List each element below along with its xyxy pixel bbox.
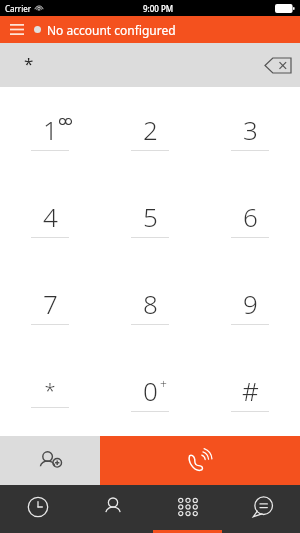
staticText: 2: [143, 112, 158, 147]
button[interactable]: 5: [100, 175, 200, 262]
staticText: 8: [143, 286, 158, 321]
staticText: 9:00 PM: [143, 3, 174, 14]
staticText: 1: [43, 112, 58, 147]
staticText: 3: [243, 112, 258, 147]
button[interactable]: #: [200, 349, 300, 436]
staticText: *: [44, 377, 56, 404]
button[interactable]: Add contact: [0, 436, 100, 485]
button[interactable]: 9: [200, 262, 300, 349]
button[interactable]: 0: [100, 349, 200, 436]
button[interactable]: *: [0, 349, 100, 436]
staticText: 5: [143, 199, 158, 234]
button[interactable]: Backspace: [256, 43, 300, 87]
button[interactable]: Recents: [0, 485, 75, 533]
button[interactable]: Menu: [0, 16, 34, 43]
staticText: No account configured: [47, 22, 176, 38]
button[interactable]: 3: [200, 87, 300, 175]
button[interactable]: 1: [0, 87, 100, 175]
button[interactable]: 2: [100, 87, 200, 175]
staticText: 6: [243, 199, 258, 234]
button[interactable]: 4: [0, 175, 100, 262]
staticText: Carrier: [5, 3, 32, 14]
staticText: *: [24, 52, 34, 75]
staticText: +: [160, 376, 167, 392]
button[interactable]: 6: [200, 175, 300, 262]
button[interactable]: Messages: [225, 485, 300, 533]
button[interactable]: 7: [0, 262, 100, 349]
staticText: 0: [143, 373, 158, 408]
button[interactable]: 8: [100, 262, 200, 349]
staticText: 9: [243, 286, 258, 321]
button[interactable]: Keypad: [150, 485, 225, 533]
staticText: 7: [43, 286, 58, 321]
button[interactable]: Call: [100, 436, 300, 485]
button[interactable]: Contacts: [75, 485, 150, 533]
staticText: #: [242, 373, 259, 408]
staticText: 4: [43, 199, 58, 234]
